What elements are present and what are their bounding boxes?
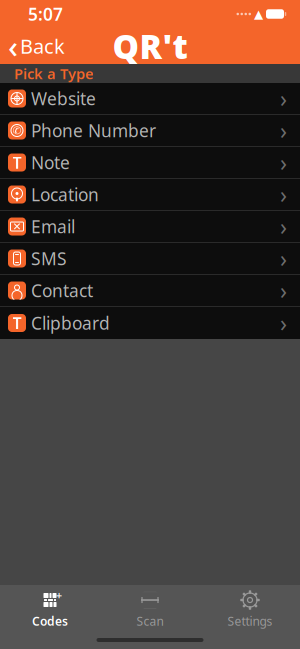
staticText: Contact — [31, 279, 93, 302]
staticText: › — [280, 83, 287, 113]
button[interactable]: ‹ — [0, 22, 65, 70]
button[interactable]: Contact — [0, 275, 300, 307]
staticText: T — [12, 312, 21, 334]
staticText: SMS — [31, 247, 67, 270]
staticText: Clipboard — [31, 311, 110, 334]
staticText: ▲ — [254, 7, 263, 21]
staticText: › — [280, 147, 287, 177]
staticText: Location — [31, 183, 99, 206]
staticText: › — [280, 308, 287, 338]
staticText: QR't — [112, 24, 187, 68]
staticText: T — [12, 152, 21, 173]
staticText: › — [280, 115, 287, 145]
staticText: › — [280, 275, 287, 305]
staticText: Codes — [32, 613, 68, 629]
button[interactable]: + — [0, 585, 100, 629]
staticText: Scan — [136, 613, 163, 629]
staticText: › — [280, 179, 287, 209]
staticText: Back — [20, 33, 65, 59]
button[interactable]: Website — [0, 83, 300, 115]
button[interactable]: Scan — [100, 585, 200, 629]
staticText: Pick a Type — [14, 64, 94, 83]
staticText: Note — [31, 151, 70, 174]
staticText: + — [56, 588, 62, 602]
staticText: › — [280, 243, 287, 273]
staticText: Settings — [227, 613, 272, 629]
staticText: › — [280, 211, 287, 241]
staticText: Phone Number — [31, 119, 156, 142]
staticText: Email — [31, 215, 75, 238]
staticText: Website — [31, 87, 96, 110]
button[interactable]: Settings — [200, 585, 300, 629]
staticText: ✆ — [12, 124, 21, 136]
button[interactable]: T — [0, 307, 300, 339]
button[interactable]: ✆ — [0, 115, 300, 147]
button[interactable]: Location — [0, 179, 300, 211]
staticText: 5:07 — [28, 2, 63, 25]
staticText: ‹ — [8, 26, 18, 66]
button[interactable]: SMS — [0, 243, 300, 275]
button[interactable]: ✕ — [0, 211, 300, 243]
staticText: ✕ — [12, 220, 21, 232]
button[interactable]: T — [0, 147, 300, 179]
